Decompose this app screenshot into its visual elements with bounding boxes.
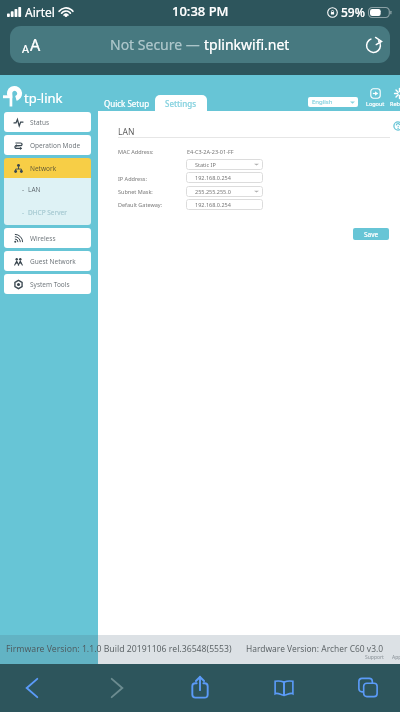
- staticText: Default Gateway:: [118, 201, 163, 208]
- staticText: Hardware Version: Archer C60 v3.0: [246, 643, 384, 655]
- button[interactable]: Bookmarks: [263, 664, 305, 712]
- staticText: Network: [30, 164, 57, 173]
- button[interactable]: Share: [179, 664, 221, 712]
- button[interactable]: Forward: [96, 664, 138, 712]
- staticText: IP Address:: [118, 175, 147, 182]
- staticText: App: [392, 654, 400, 661]
- button[interactable]: Status: [4, 112, 91, 132]
- staticText: E4-C3-2A-23-01-FF: [187, 148, 234, 155]
- button[interactable]: Operation Mode: [4, 135, 91, 155]
- button[interactable]: 255.255.255.0: [186, 186, 263, 197]
- staticText: A: [22, 41, 30, 56]
- staticText: 192.168.0.254: [195, 201, 231, 208]
- button[interactable]: English: [308, 97, 358, 107]
- staticText: -: [22, 185, 25, 194]
- button[interactable]: -: [4, 201, 91, 224]
- button[interactable]: Text size: [22, 34, 41, 56]
- staticText: Guest Network: [30, 257, 76, 266]
- staticText: LAN: [118, 126, 135, 138]
- button[interactable]: 192.168.0.254: [186, 199, 263, 210]
- staticText: English: [312, 98, 333, 106]
- button[interactable]: Static IP: [186, 159, 263, 170]
- staticText: Not Secure —: [110, 35, 204, 54]
- button[interactable]: Tabs: [347, 664, 389, 712]
- staticText: Reboot: [390, 100, 400, 107]
- staticText: Logout: [366, 100, 385, 107]
- button[interactable]: Quick Setup: [104, 95, 150, 111]
- staticText: Quick Setup: [104, 98, 150, 109]
- staticText: 59%: [341, 4, 365, 20]
- staticText: Support: [365, 654, 384, 661]
- button[interactable]: 192.168.0.254: [186, 172, 263, 183]
- staticText: Wireless: [30, 234, 56, 243]
- staticText: Subnet Mask:: [118, 188, 153, 195]
- staticText: MAC Address:: [118, 148, 154, 155]
- staticText: Airtel: [25, 4, 55, 20]
- staticText: 10:38 PM: [172, 2, 229, 20]
- button[interactable]: Reboot: [389, 88, 400, 107]
- button[interactable]: Guest Network: [4, 251, 91, 271]
- button[interactable]: Back: [11, 664, 53, 712]
- button[interactable]: System Tools: [4, 274, 91, 294]
- staticText: Save: [364, 230, 379, 239]
- button[interactable]: Network: [4, 158, 91, 178]
- staticText: tp-link: [24, 89, 63, 107]
- button[interactable]: Wireless: [4, 228, 91, 248]
- staticText: Operation Mode: [30, 141, 81, 150]
- staticText: Firmware Version: 1.1.0 Build 20191106 r…: [6, 643, 232, 655]
- staticText: LAN: [28, 185, 41, 194]
- staticText: DHCP Server: [28, 208, 67, 217]
- button[interactable]: Logout: [365, 88, 385, 107]
- staticText: A: [30, 34, 41, 56]
- staticText: -: [22, 208, 25, 217]
- staticText: 255.255.255.0: [195, 188, 231, 195]
- button[interactable]: Reload: [362, 34, 384, 56]
- staticText: Static IP: [195, 161, 216, 168]
- button[interactable]: Text size: [10, 26, 390, 63]
- button[interactable]: -: [4, 178, 91, 201]
- button[interactable]: Settings: [155, 95, 207, 111]
- staticText: System Tools: [30, 280, 70, 289]
- staticText: Status: [30, 118, 50, 127]
- staticText: 192.168.0.254: [195, 174, 231, 181]
- staticText: Settings: [165, 98, 197, 109]
- staticText: tplinkwifi.net: [204, 35, 290, 54]
- button[interactable]: Help: [393, 121, 400, 131]
- button[interactable]: Save: [353, 228, 389, 240]
